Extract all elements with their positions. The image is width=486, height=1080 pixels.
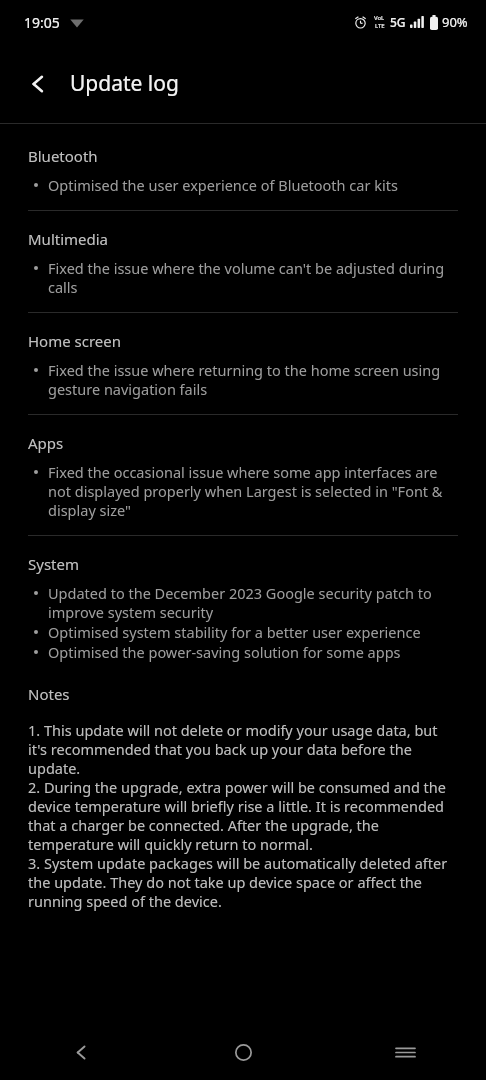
staticText: 19:05: [24, 13, 60, 32]
staticText: Notes: [28, 684, 70, 704]
staticText: Apps: [28, 433, 64, 453]
staticText: Fixed the issue where the volume can't b…: [48, 258, 462, 297]
staticText: LTE: [375, 22, 385, 30]
staticText: Fixed the issue where returning to the h…: [48, 360, 462, 399]
button[interactable]: Back: [14, 60, 62, 108]
staticText: System: [28, 554, 79, 574]
staticText: 5G: [390, 14, 406, 30]
staticText: 90%: [442, 13, 468, 31]
staticText: Optimised the power-saving solution for …: [48, 642, 401, 662]
button[interactable]: Recent apps: [324, 1024, 486, 1080]
staticText: Optimised system stability for a better …: [48, 622, 421, 642]
button[interactable]: Home: [162, 1024, 324, 1080]
staticText: Multimedia: [28, 229, 109, 249]
staticText: 1. This update will not delete or modify…: [28, 720, 460, 912]
staticText: Update log: [70, 69, 179, 98]
button[interactable]: Back: [0, 1024, 162, 1080]
staticText: Updated to the December 2023 Google secu…: [48, 583, 462, 622]
staticText: VoL: [374, 14, 385, 22]
staticText: Fixed the occasional issue where some ap…: [48, 462, 462, 520]
staticText: Home screen: [28, 331, 122, 351]
staticText: Bluetooth: [28, 146, 98, 166]
staticText: Optimised the user experience of Bluetoo…: [48, 175, 398, 195]
